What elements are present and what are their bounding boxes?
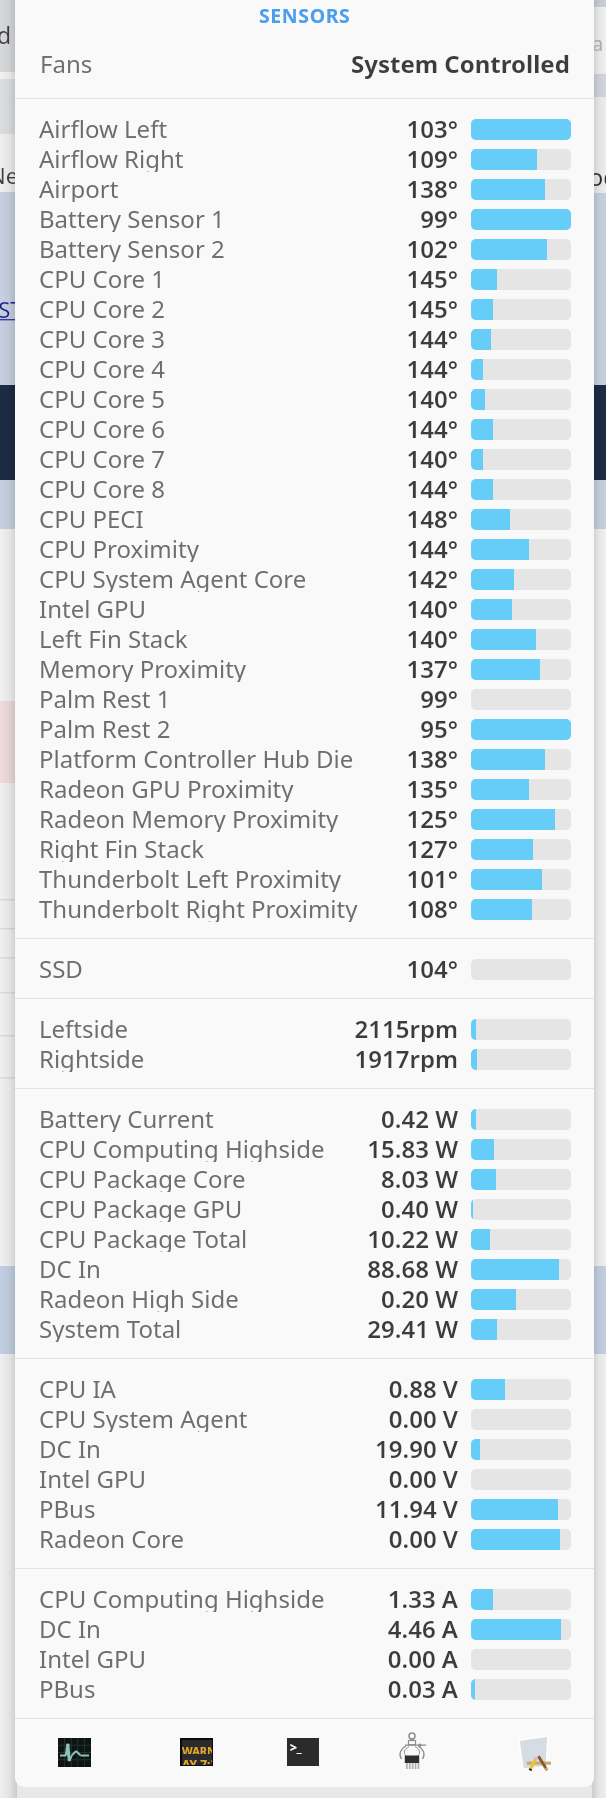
staticText: 140° [406,622,458,652]
staticText: 138° [406,172,458,202]
staticText: Intel GPU [39,1642,147,1672]
button[interactable]: Radeon High Side [15,1284,594,1314]
button[interactable]: CPU Core 5 [15,384,594,414]
button[interactable]: Palm Rest 1 [15,684,594,714]
button[interactable]: Battery Current [15,1104,594,1134]
staticText: 0.88 V [388,1372,458,1402]
button[interactable]: PBus [15,1674,594,1704]
staticText: DC In [39,1612,101,1642]
staticText: 140° [406,592,458,622]
button[interactable]: Airflow Right [15,144,594,174]
button[interactable]: Rightside [15,1044,594,1074]
button[interactable]: CPU Core 6 [15,414,594,444]
staticText: Palm Rest 2 [39,712,171,742]
button[interactable]: Thunderbolt Left Proximity [15,864,594,894]
staticText: 0.00 V [388,1522,458,1552]
button[interactable]: Terminal [280,1729,326,1775]
staticText: 144° [406,472,458,502]
staticText: 88.68 W [367,1252,458,1282]
staticText: 102° [406,232,458,262]
button[interactable]: Thunderbolt Right Proximity [15,894,594,924]
button[interactable]: Console warnings [173,1729,219,1775]
staticText: CPU Core 3 [39,322,166,352]
button[interactable]: CPU PECI [15,504,594,534]
button[interactable]: System Total [15,1314,594,1344]
staticText: 103° [406,112,458,142]
staticText: CPU IA [39,1372,116,1402]
staticText: >_ [290,1739,302,1755]
staticText: 142° [406,562,458,592]
button[interactable]: CPU Core 1 [15,264,594,294]
button[interactable]: Palm Rest 2 [15,714,594,744]
staticText: 1.33 A [387,1582,458,1612]
button[interactable]: Leftside [15,1014,594,1044]
staticText: Intel GPU [39,592,147,622]
button[interactable]: DC In [15,1254,594,1284]
staticText: 125° [406,802,458,832]
button[interactable]: DC In [15,1614,594,1644]
staticText: 0.03 A [387,1672,458,1702]
button[interactable]: DC In [15,1434,594,1464]
staticText: Right Fin Stack [39,832,204,862]
button[interactable]: Radeon GPU Proximity [15,774,594,804]
staticText: Thunderbolt Left Proximity [39,862,342,892]
staticText: CPU Core 2 [39,292,166,322]
staticText: 10.22 W [367,1222,458,1252]
button[interactable]: Left Fin Stack [15,624,594,654]
staticText: 148° [406,502,458,532]
staticText: Battery Sensor 1 [39,202,225,232]
button[interactable]: CPU Computing Highside [15,1134,594,1164]
button[interactable]: TextEdit [510,1729,556,1775]
button[interactable]: CPU Package GPU [15,1194,594,1224]
staticText: 4.46 A [387,1612,458,1642]
button[interactable]: Right Fin Stack [15,834,594,864]
staticText: Airflow Left [39,112,168,142]
button[interactable]: CPU System Agent [15,1404,594,1434]
staticText: CPU Core 7 [39,442,166,472]
staticText: CPU System Agent [39,1402,248,1432]
staticText: 99° [420,682,458,712]
button[interactable]: Platform Controller Hub Die [15,744,594,774]
button[interactable]: Intel GPU [15,1464,594,1494]
button[interactable]: CPU System Agent Core [15,564,594,594]
staticText: CPU Core 8 [39,472,166,502]
button[interactable]: Intel GPU [15,1644,594,1674]
staticText: 137° [406,652,458,682]
button[interactable]: Hardware monitor [389,1729,435,1775]
button[interactable]: CPU Core 3 [15,324,594,354]
button[interactable]: CPU Package Core [15,1164,594,1194]
staticText: 101° [406,862,458,892]
button[interactable]: CPU Core 8 [15,474,594,504]
button[interactable]: Radeon Memory Proximity [15,804,594,834]
staticText: INSTALL [0,294,59,324]
button[interactable]: CPU Core 7 [15,444,594,474]
button[interactable]: PBus [15,1494,594,1524]
button[interactable]: CPU Core 2 [15,294,594,324]
button[interactable]: CPU Proximity [15,534,594,564]
button[interactable]: Airport [15,174,594,204]
button[interactable]: Battery Sensor 1 [15,204,594,234]
button[interactable]: CPU Core 4 [15,354,594,384]
button[interactable]: SSD [15,954,594,984]
button[interactable]: Airflow Left [15,114,594,144]
button[interactable]: Memory Proximity [15,654,594,684]
staticText: System Controlled [351,47,570,80]
staticText: 1917rpm [354,1042,458,1072]
button[interactable]: Activity Monitor [51,1729,97,1775]
staticText: PBus [39,1672,96,1702]
staticText: 144° [406,412,458,442]
button[interactable]: CPU Package Total [15,1224,594,1254]
staticText: 8.03 W [381,1162,458,1192]
button[interactable]: Intel GPU [15,594,594,624]
button[interactable]: Radeon Core [15,1524,594,1554]
staticText: 0.20 W [381,1282,458,1312]
staticText: 140° [406,382,458,412]
staticText: 108° [406,892,458,922]
staticText: CPU System Agent Core [39,562,307,592]
staticText: DC In [39,1252,101,1282]
button[interactable]: Battery Sensor 2 [15,234,594,264]
button[interactable]: CPU Computing Highside [15,1584,594,1614]
staticText: 145° [406,292,458,322]
staticText: 145° [406,262,458,292]
button[interactable]: CPU IA [15,1374,594,1404]
